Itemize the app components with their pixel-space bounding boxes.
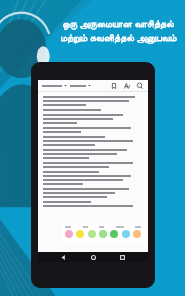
button[interactable] [42, 81, 67, 90]
button[interactable]: Bookmark [110, 82, 118, 90]
staticText: ஒரு அருமையான வாசித்தல் [62, 17, 174, 30]
button[interactable] [122, 230, 130, 238]
button[interactable] [70, 81, 91, 90]
button[interactable]: Back [59, 253, 68, 262]
button[interactable]: Recent apps [118, 253, 127, 262]
button[interactable] [65, 230, 73, 238]
staticText: மற்றும் கவனித்தல் அனுபவம் [60, 31, 177, 44]
button[interactable] [88, 230, 96, 238]
button[interactable]: Text size [123, 82, 131, 90]
button[interactable]: Search [136, 82, 144, 90]
button[interactable]: Home [89, 253, 98, 262]
button[interactable] [133, 230, 141, 238]
button[interactable] [99, 230, 107, 238]
button[interactable] [76, 230, 84, 238]
button[interactable] [110, 230, 118, 238]
